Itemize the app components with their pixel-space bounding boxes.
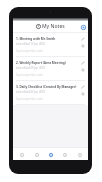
button[interactable]: Tab 5 — [74, 149, 85, 160]
button[interactable]: Tab 4 — [59, 149, 70, 160]
staticText: 2. Weekly Report (Area Meeting) — [16, 61, 66, 65]
button[interactable]: Edit note — [80, 60, 85, 65]
staticText: Tap to open this note — [16, 49, 43, 53]
staticText: Last edited 02 Jan 2018 — [16, 90, 46, 94]
button[interactable]: More options — [80, 43, 85, 48]
staticText: My Notes — [42, 23, 65, 30]
staticText: 3. Daily Checklist (Created By Manager) — [16, 85, 77, 89]
button[interactable]: Edit note — [80, 36, 85, 41]
staticText: Tap to open this note — [16, 97, 43, 101]
staticText: Tap to open this note — [16, 73, 43, 77]
button[interactable]: Account — [78, 22, 88, 32]
staticText: 1. Meeting with Mr. Smith — [16, 37, 56, 41]
button[interactable]: 1. Meeting with Mr. Smith — [13, 33, 88, 57]
button[interactable]: More options — [80, 91, 85, 96]
button[interactable]: 3. Daily Checklist (Created By Manager) — [13, 81, 88, 105]
button[interactable]: 2. Weekly Report (Area Meeting) — [13, 57, 88, 81]
button[interactable]: Tab 1 — [16, 149, 27, 160]
staticText: Last edited 12 Jan 2018 — [16, 42, 46, 46]
staticText: Last edited 09 Jan 2018 — [16, 66, 46, 70]
button[interactable]: More options — [80, 67, 85, 72]
button[interactable]: Edit note — [80, 84, 85, 89]
button[interactable]: Tab 3 — [45, 149, 56, 160]
button[interactable]: Tab 2 — [31, 149, 42, 160]
